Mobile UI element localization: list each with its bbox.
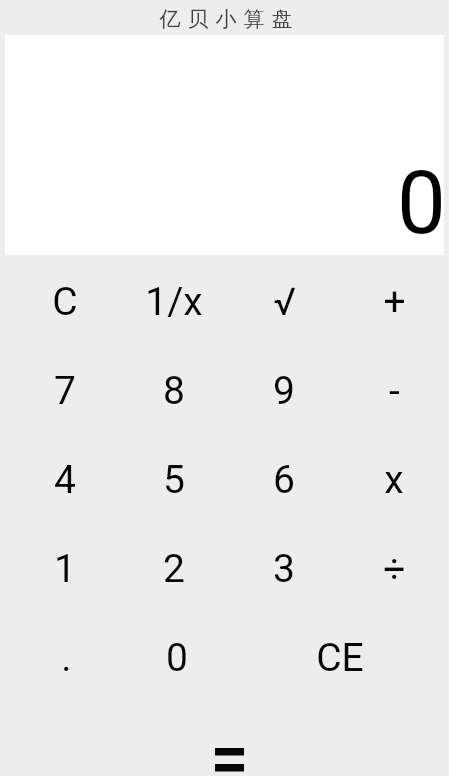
button[interactable]: - [339,344,449,433]
button[interactable]: 1/x [119,255,229,344]
button[interactable]: 7 [10,344,119,433]
button[interactable]: 8 [119,344,229,433]
button[interactable]: . [10,611,119,700]
button[interactable]: x [339,433,449,522]
staticText: 7 [54,368,76,414]
button[interactable]: 9 [229,344,339,433]
button[interactable]: 0 [5,35,444,255]
staticText: 1/x [145,279,203,325]
button[interactable]: 1 [10,522,119,611]
button[interactable]: √ [229,255,339,344]
staticText: 3 [273,546,295,592]
button[interactable]: Equals [10,700,449,776]
button[interactable]: 4 [10,433,119,522]
staticText: 4 [54,457,76,503]
button[interactable]: CE [229,611,449,700]
staticText: 亿贝小算盘 [156,6,296,32]
staticText: C [52,279,78,325]
button[interactable]: + [339,255,449,344]
button[interactable]: 6 [229,433,339,522]
staticText: 1 [54,546,76,592]
staticText: 0 [166,635,188,681]
staticText: + [383,279,406,325]
staticText: 6 [273,457,295,503]
staticText: . [61,635,72,681]
button[interactable]: 0 [119,611,229,700]
staticText: 2 [163,546,185,592]
staticText: 9 [273,368,295,414]
button[interactable]: 2 [119,522,229,611]
staticText: - [389,368,400,414]
staticText: 5 [163,457,185,503]
staticText: x [384,457,404,503]
button[interactable]: C [10,255,119,344]
staticText: ÷ [383,546,406,592]
staticText: 0 [397,152,446,254]
staticText: CE [316,635,364,681]
staticText: √ [273,280,296,325]
staticText: 8 [163,368,185,414]
button[interactable]: 3 [229,522,339,611]
button[interactable]: ÷ [339,522,449,611]
button[interactable]: 5 [119,433,229,522]
